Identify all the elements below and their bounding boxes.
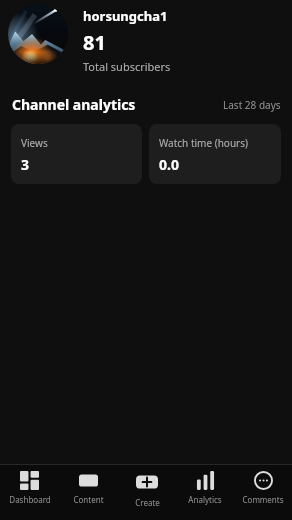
staticText: 3 — [21, 155, 30, 174]
button[interactable]: horsungcha1 — [8, 4, 280, 74]
button[interactable]: Comments — [234, 465, 292, 520]
button[interactable]: Watch time (hours) — [149, 124, 281, 184]
button[interactable]: Dashboard — [0, 465, 59, 520]
staticText: horsungcha1 — [83, 7, 168, 25]
staticText: Total subscribers — [83, 59, 171, 74]
staticText: Analytics — [188, 494, 222, 505]
button[interactable]: Create — [118, 465, 176, 520]
button[interactable]: Analytics — [176, 465, 234, 520]
button[interactable]: Views — [11, 124, 142, 184]
staticText: Last 28 days — [223, 98, 281, 112]
staticText: 0.0 — [159, 155, 179, 174]
staticText: Content — [73, 494, 104, 505]
staticText: Channel analytics — [12, 95, 136, 114]
staticText: Views — [21, 136, 48, 150]
staticText: Create — [135, 497, 160, 508]
staticText: 81 — [83, 29, 106, 56]
staticText: Dashboard — [9, 494, 51, 505]
staticText: Comments — [242, 494, 284, 505]
staticText: Watch time (hours) — [159, 136, 249, 150]
button[interactable]: Content — [59, 465, 118, 520]
